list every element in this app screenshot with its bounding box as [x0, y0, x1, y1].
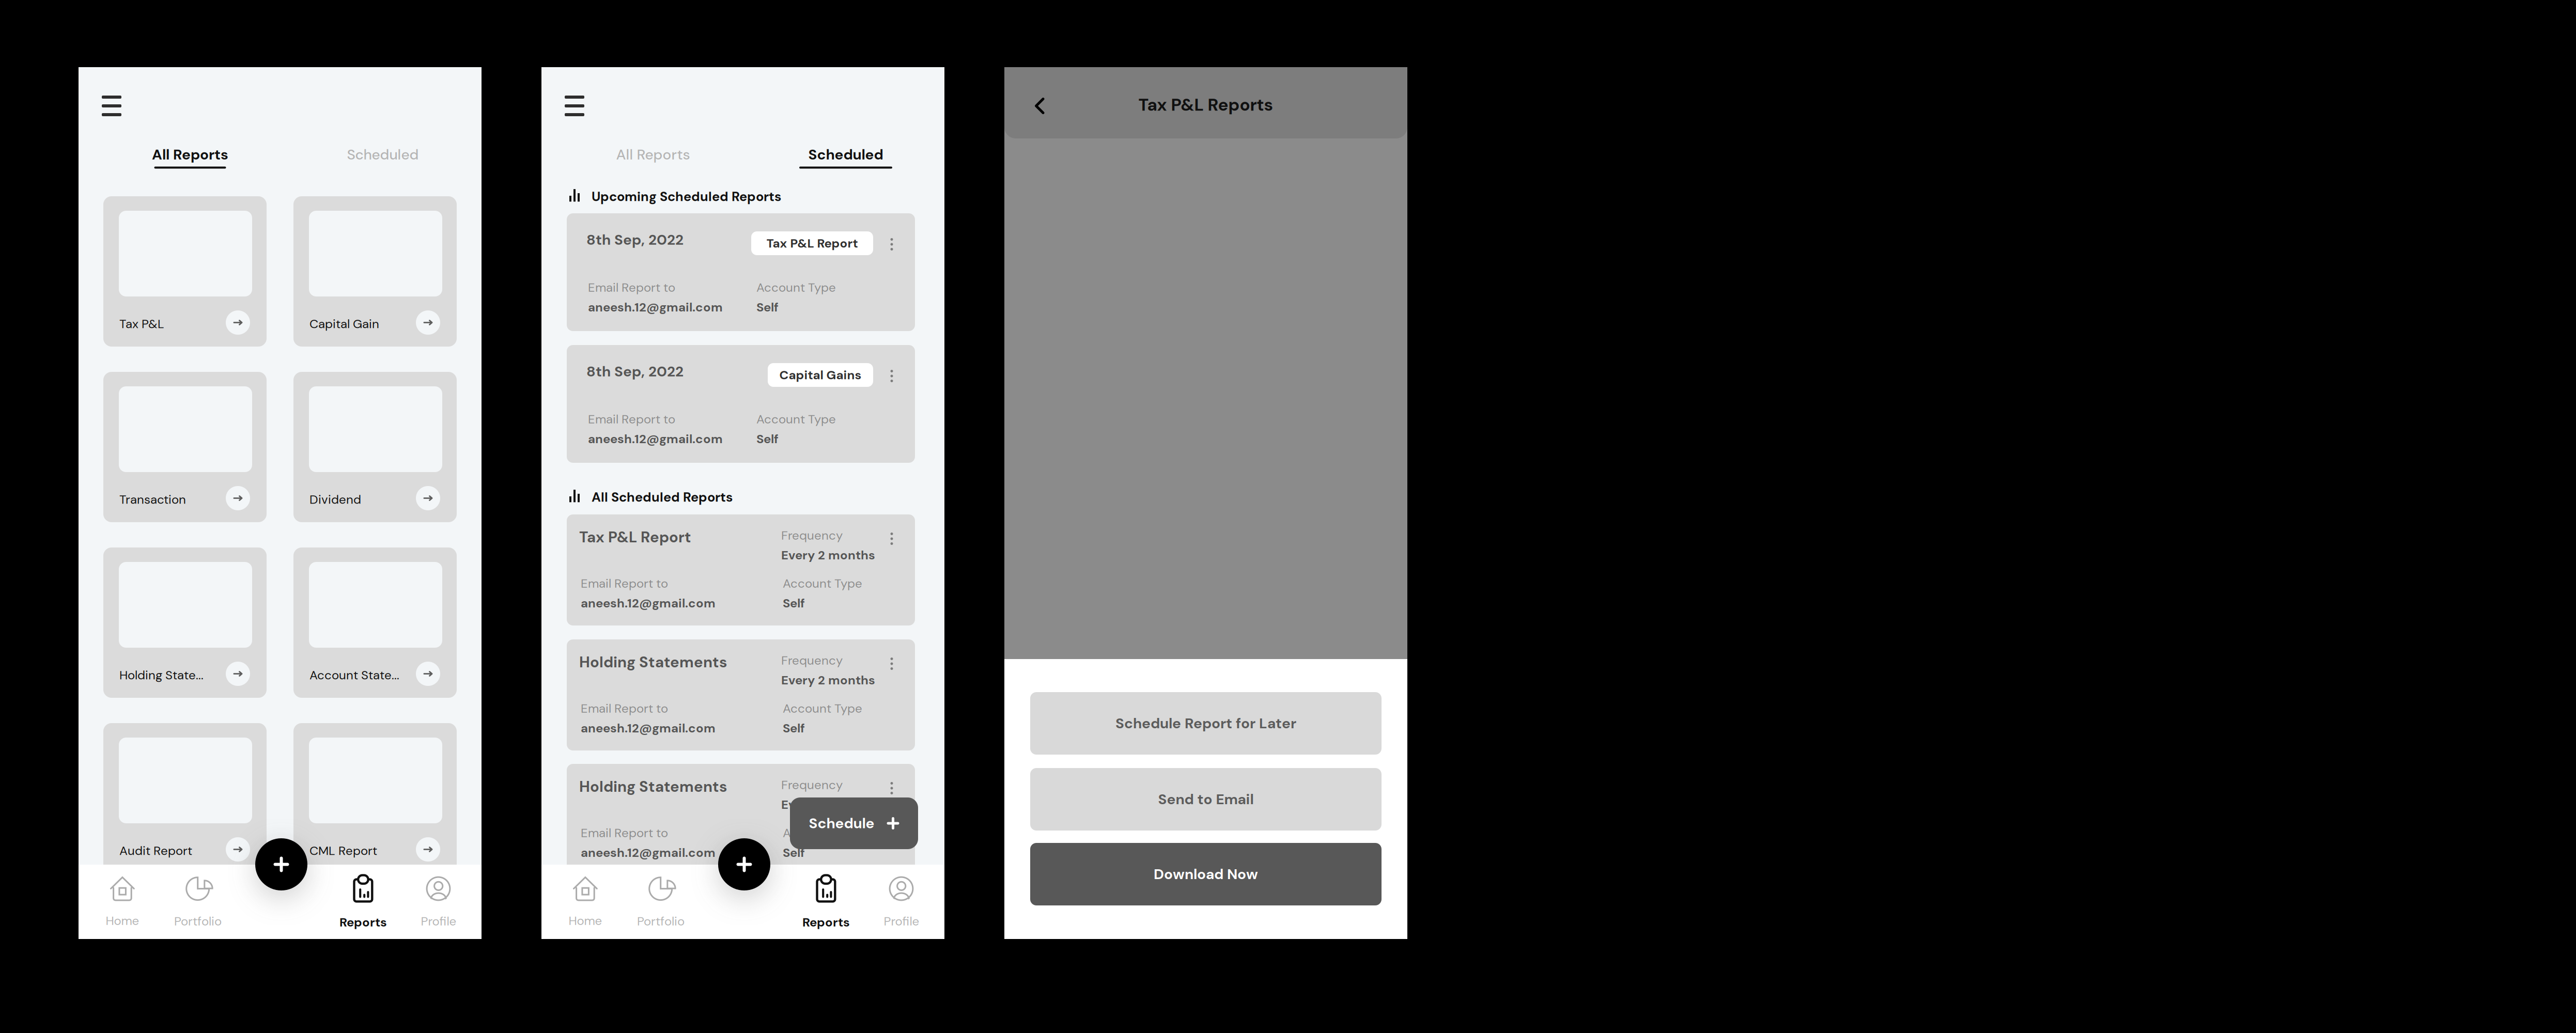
staticText: Scheduled [808, 145, 883, 164]
staticText: aneesh.12@gmail.com [588, 299, 723, 315]
staticText: Transaction [119, 491, 186, 508]
staticText: Every 2 months [781, 672, 875, 688]
staticText: Send to Email [1158, 790, 1254, 809]
staticText: All Scheduled Reports [592, 489, 733, 506]
button[interactable]: Tax P&L [103, 196, 267, 347]
button[interactable]: Add report [718, 838, 770, 890]
staticText: Self [783, 845, 805, 861]
button[interactable]: Reports [324, 865, 402, 939]
staticText: Account Type [783, 825, 862, 841]
button[interactable]: Account State... [293, 547, 457, 698]
staticText: Email Report to [581, 575, 668, 591]
button[interactable]: More options [883, 653, 901, 675]
staticText: Self [783, 720, 805, 736]
staticText: Profile [421, 913, 456, 929]
button[interactable]: All Reports [576, 145, 731, 172]
staticText: Reports [802, 914, 850, 930]
staticText: aneesh.12@gmail.com [581, 845, 716, 861]
staticText: Download Now [1154, 865, 1258, 884]
staticText: Tax P&L Report [766, 235, 858, 251]
button[interactable]: Reports [787, 865, 865, 939]
staticText: 8th Sep, 2022 [586, 362, 684, 381]
button[interactable]: Holding State... [103, 547, 267, 698]
button[interactable]: Home [547, 865, 624, 939]
button[interactable]: More options [883, 777, 901, 799]
button[interactable]: Dividend [293, 372, 457, 522]
staticText: aneesh.12@gmail.com [581, 720, 716, 736]
button[interactable]: More options [883, 365, 901, 387]
button[interactable]: Profile [400, 865, 477, 939]
staticText: aneesh.12@gmail.com [581, 595, 716, 611]
button[interactable]: More options [883, 528, 901, 550]
staticText: Schedule Report for Later [1115, 714, 1296, 733]
staticText: Audit Report [119, 843, 192, 859]
staticText: All Reports [616, 145, 690, 164]
staticText: Email Report to [581, 700, 668, 716]
staticText: Account Type [783, 575, 862, 591]
button[interactable]: Portfolio [622, 865, 700, 939]
staticText: Email Report to [581, 825, 668, 841]
staticText: Dividend [309, 491, 361, 508]
staticText: Frequency [781, 652, 843, 668]
staticText: All Reports [152, 145, 228, 164]
button[interactable]: CML Report [293, 723, 457, 873]
staticText: 8th Sep, 2022 [586, 230, 684, 249]
staticText: Email Report to [588, 411, 675, 427]
button[interactable]: Audit Report [103, 723, 267, 873]
staticText: Tax P&L Reports [1138, 94, 1273, 116]
staticText: Profile [884, 913, 919, 929]
staticText: Frequency [781, 527, 843, 543]
staticText: Account State... [309, 667, 399, 683]
staticText: Self [756, 299, 779, 315]
staticText: Holding Statements [579, 777, 727, 797]
button[interactable]: Home [84, 865, 161, 939]
staticText: Upcoming Scheduled Reports [592, 188, 781, 205]
staticText: Every 2 months [781, 797, 875, 813]
staticText: Every 2 months [781, 547, 875, 563]
button[interactable]: Menu [102, 90, 134, 122]
staticText: CML Report [309, 843, 377, 859]
staticText: Portfolio [174, 913, 222, 929]
staticText: Holding Statements [579, 652, 727, 672]
button[interactable]: All Reports [113, 145, 268, 172]
button[interactable]: Capital Gain [293, 196, 457, 347]
staticText: Self [783, 595, 805, 611]
staticText: Holding State... [119, 667, 204, 683]
staticText: Account Type [756, 411, 836, 427]
staticText: Scheduled [347, 145, 419, 164]
button[interactable]: Portfolio [159, 865, 237, 939]
staticText: Home [106, 913, 139, 929]
staticText: Tax P&L [119, 316, 164, 332]
button[interactable]: Menu [565, 90, 597, 122]
button[interactable]: Schedule Report for Later [1030, 692, 1382, 755]
staticText: Self [756, 431, 779, 447]
button[interactable]: Back [1025, 87, 1055, 124]
staticText: Email Report to [588, 279, 675, 296]
staticText: Home [569, 913, 602, 929]
staticText: Reports [339, 914, 387, 930]
button[interactable]: Tax P&L Report [751, 231, 873, 255]
button[interactable]: Download Now [1030, 843, 1382, 905]
button[interactable]: Scheduled [768, 145, 923, 172]
staticText: Capital Gain [309, 316, 379, 332]
staticText: Schedule [809, 814, 874, 833]
button[interactable]: Scheduled [305, 145, 460, 172]
staticText: Portfolio [637, 913, 685, 929]
staticText: Account Type [783, 700, 862, 716]
button[interactable]: More options [883, 233, 901, 255]
button[interactable]: Transaction [103, 372, 267, 522]
button[interactable]: Send to Email [1030, 768, 1382, 831]
button[interactable]: Profile [863, 865, 940, 939]
button[interactable]: Add report [255, 838, 307, 890]
button[interactable]: Schedule [790, 797, 918, 849]
staticText: Capital Gains [779, 367, 862, 383]
staticText: Frequency [781, 777, 843, 793]
button[interactable]: Capital Gains [768, 363, 873, 387]
staticText: Account Type [756, 279, 836, 296]
staticText: Tax P&L Report [579, 527, 691, 547]
staticText: aneesh.12@gmail.com [588, 431, 723, 447]
